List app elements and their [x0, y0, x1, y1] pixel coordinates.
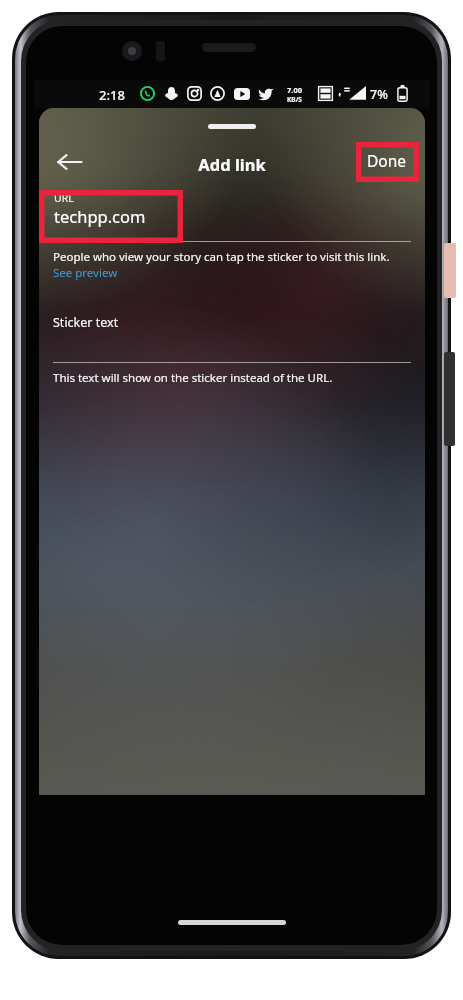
staticText: 2:18: [99, 86, 125, 104]
staticText: URL: [54, 191, 74, 205]
staticText: Add link: [198, 153, 266, 175]
button[interactable]: URL: [53, 191, 411, 241]
staticText: 7.00: [287, 85, 302, 95]
staticText: This text will show on the sticker inste…: [53, 370, 333, 386]
staticText: techpp.com: [54, 205, 146, 227]
button[interactable]: Sticker text: [53, 308, 411, 356]
staticText: People who view your story can tap the s…: [53, 249, 411, 281]
staticText: KB/S: [287, 95, 302, 104]
button[interactable]: Power button: [444, 243, 456, 298]
button[interactable]: Back: [47, 140, 91, 184]
staticText: Sticker text: [53, 314, 119, 331]
staticText: 7%: [370, 86, 388, 103]
button[interactable]: Volume button: [444, 352, 455, 446]
staticText: Done: [367, 150, 407, 171]
button[interactable]: Done: [359, 144, 415, 176]
